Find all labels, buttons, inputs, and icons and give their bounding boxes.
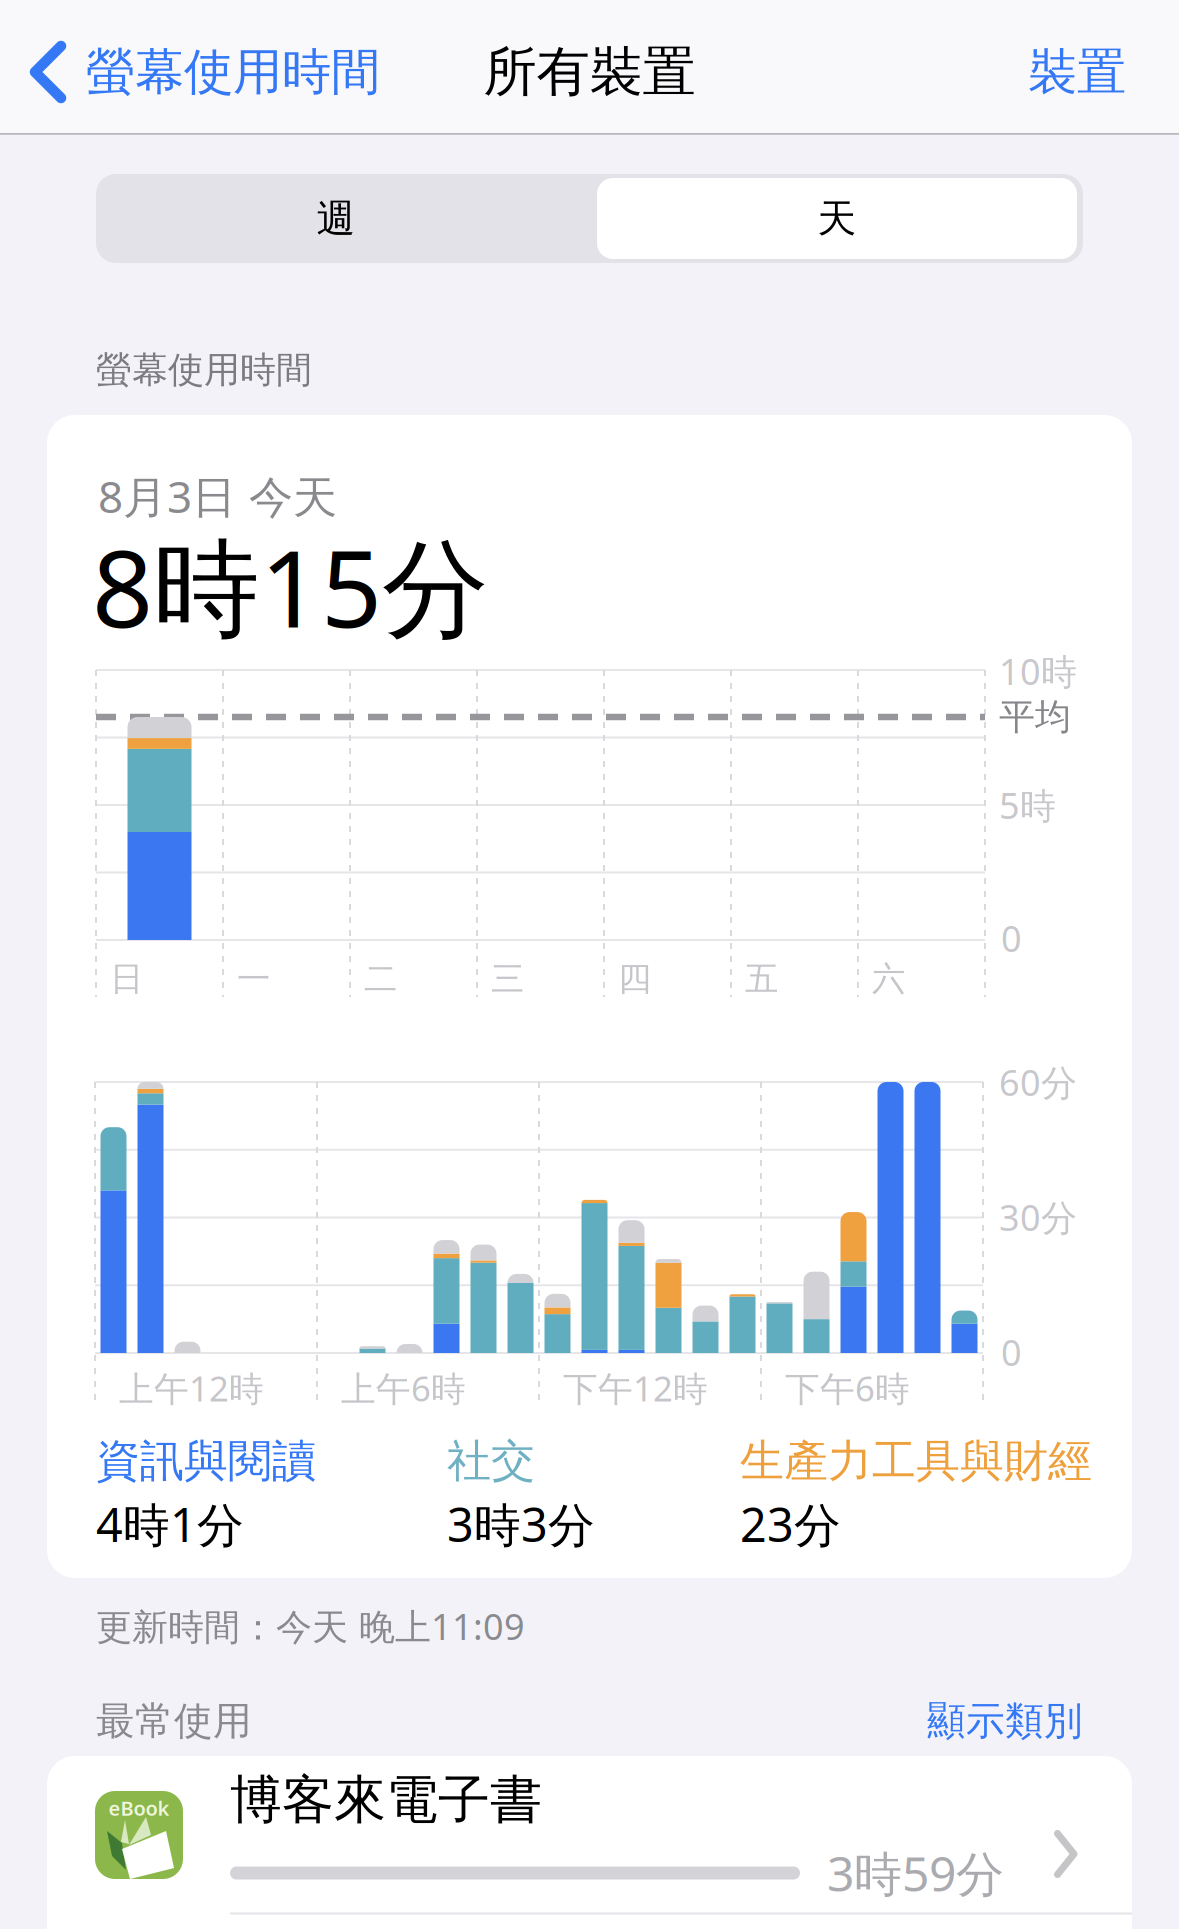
- staticText: 10時: [999, 647, 1077, 695]
- staticText: 上午12時: [119, 1365, 264, 1411]
- staticText: 下午6時: [785, 1365, 910, 1411]
- staticText: 所有裝置: [483, 39, 695, 105]
- staticText: 上午6時: [341, 1365, 466, 1411]
- button[interactable]: 裝置: [0, 0, 1179, 1929]
- staticText: 平均: [999, 695, 1071, 739]
- button[interactable]: 週: [96, 178, 576, 259]
- staticText: 三: [491, 958, 524, 999]
- button[interactable]: 螢幕使用時間: [30, 27, 450, 117]
- staticText: 30分: [999, 1193, 1077, 1241]
- staticText: 六: [872, 958, 905, 999]
- staticText: eBook: [108, 1795, 169, 1821]
- staticText: 博客來電子書: [230, 1768, 542, 1832]
- staticText: 4時1分: [96, 1493, 244, 1555]
- staticText: 下午12時: [563, 1365, 708, 1411]
- staticText: 8月3日 今天: [98, 467, 337, 525]
- staticText: 資訊與閱讀: [96, 1434, 316, 1488]
- staticText: 二: [364, 958, 397, 999]
- staticText: 螢幕使用時間: [86, 42, 380, 102]
- staticText: 0: [1001, 1328, 1022, 1376]
- staticText: 裝置: [1028, 42, 1126, 102]
- button[interactable]: 顯示類別: [0, 0, 1179, 1929]
- button[interactable]: eBook: [47, 1756, 1132, 1929]
- staticText: 螢幕使用時間: [96, 348, 312, 392]
- staticText: 一: [237, 958, 270, 999]
- staticText: 日: [110, 958, 143, 999]
- staticText: 5時: [999, 781, 1056, 829]
- staticText: 五: [745, 958, 778, 999]
- staticText: 最常使用: [96, 1697, 252, 1745]
- staticText: 0: [1001, 914, 1022, 962]
- staticText: 3時3分: [447, 1493, 595, 1555]
- staticText: 更新時間：今天 晚上11:09: [96, 1602, 525, 1650]
- staticText: 23分: [740, 1493, 841, 1555]
- staticText: 社交: [447, 1434, 535, 1488]
- staticText: 生產力工具與財經: [740, 1434, 1092, 1488]
- staticText: 週: [316, 195, 355, 242]
- staticText: 四: [618, 958, 651, 999]
- staticText: 顯示類別: [927, 1697, 1083, 1745]
- staticText: 8時15分: [92, 515, 489, 657]
- button[interactable]: 天: [597, 178, 1077, 259]
- staticText: 60分: [999, 1058, 1077, 1106]
- staticText: 天: [817, 195, 856, 242]
- staticText: 3時59分: [827, 1841, 1004, 1905]
